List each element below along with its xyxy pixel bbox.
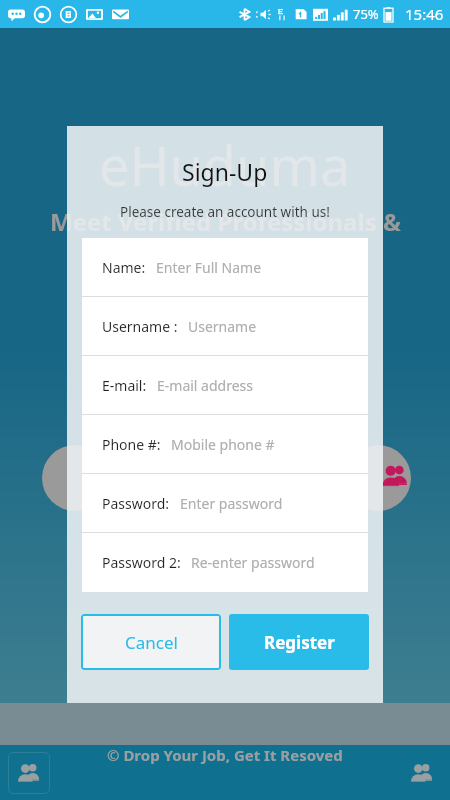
- staticText: Enter Full Name: [156, 258, 262, 277]
- staticText: Mobile phone #: [171, 435, 275, 454]
- staticText: Intrepreneurs: [141, 240, 309, 273]
- staticText: Enter password: [180, 494, 283, 513]
- button[interactable]: Contacts: [406, 757, 438, 789]
- button[interactable]: Phone #:: [82, 415, 368, 473]
- staticText: Phone #:: [102, 435, 161, 454]
- staticText: Name:: [102, 258, 146, 277]
- staticText: Sign-Up: [182, 156, 268, 187]
- staticText: Cancel: [125, 631, 178, 654]
- button[interactable]: Username :: [82, 297, 368, 355]
- button[interactable]: Name:: [82, 238, 368, 296]
- staticText: 75%: [353, 5, 379, 23]
- button[interactable]: Cancel: [81, 614, 221, 670]
- staticText: Password:: [102, 494, 170, 513]
- staticText: Register: [264, 631, 335, 654]
- button[interactable]: Password:: [82, 474, 368, 532]
- staticText: © Drop Your Job, Get It Resoved: [107, 745, 343, 765]
- button[interactable]: Professionals: [8, 752, 50, 794]
- staticText: Re-enter password: [191, 553, 315, 572]
- staticText: 15:46: [405, 4, 444, 24]
- staticText: Meet Verified Professionals &: [50, 205, 401, 238]
- staticText: Please create an account with us!: [120, 203, 330, 221]
- button[interactable]: Password 2:: [82, 533, 368, 591]
- staticText: E-mail:: [102, 376, 147, 395]
- staticText: Username: [188, 317, 257, 336]
- button[interactable]: E-mail:: [82, 356, 368, 414]
- staticText: eHuduma: [99, 128, 351, 202]
- staticText: Username :: [102, 317, 178, 336]
- staticText: Password 2:: [102, 553, 181, 572]
- button[interactable]: Register: [229, 614, 369, 670]
- staticText: E-mail address: [157, 376, 253, 395]
